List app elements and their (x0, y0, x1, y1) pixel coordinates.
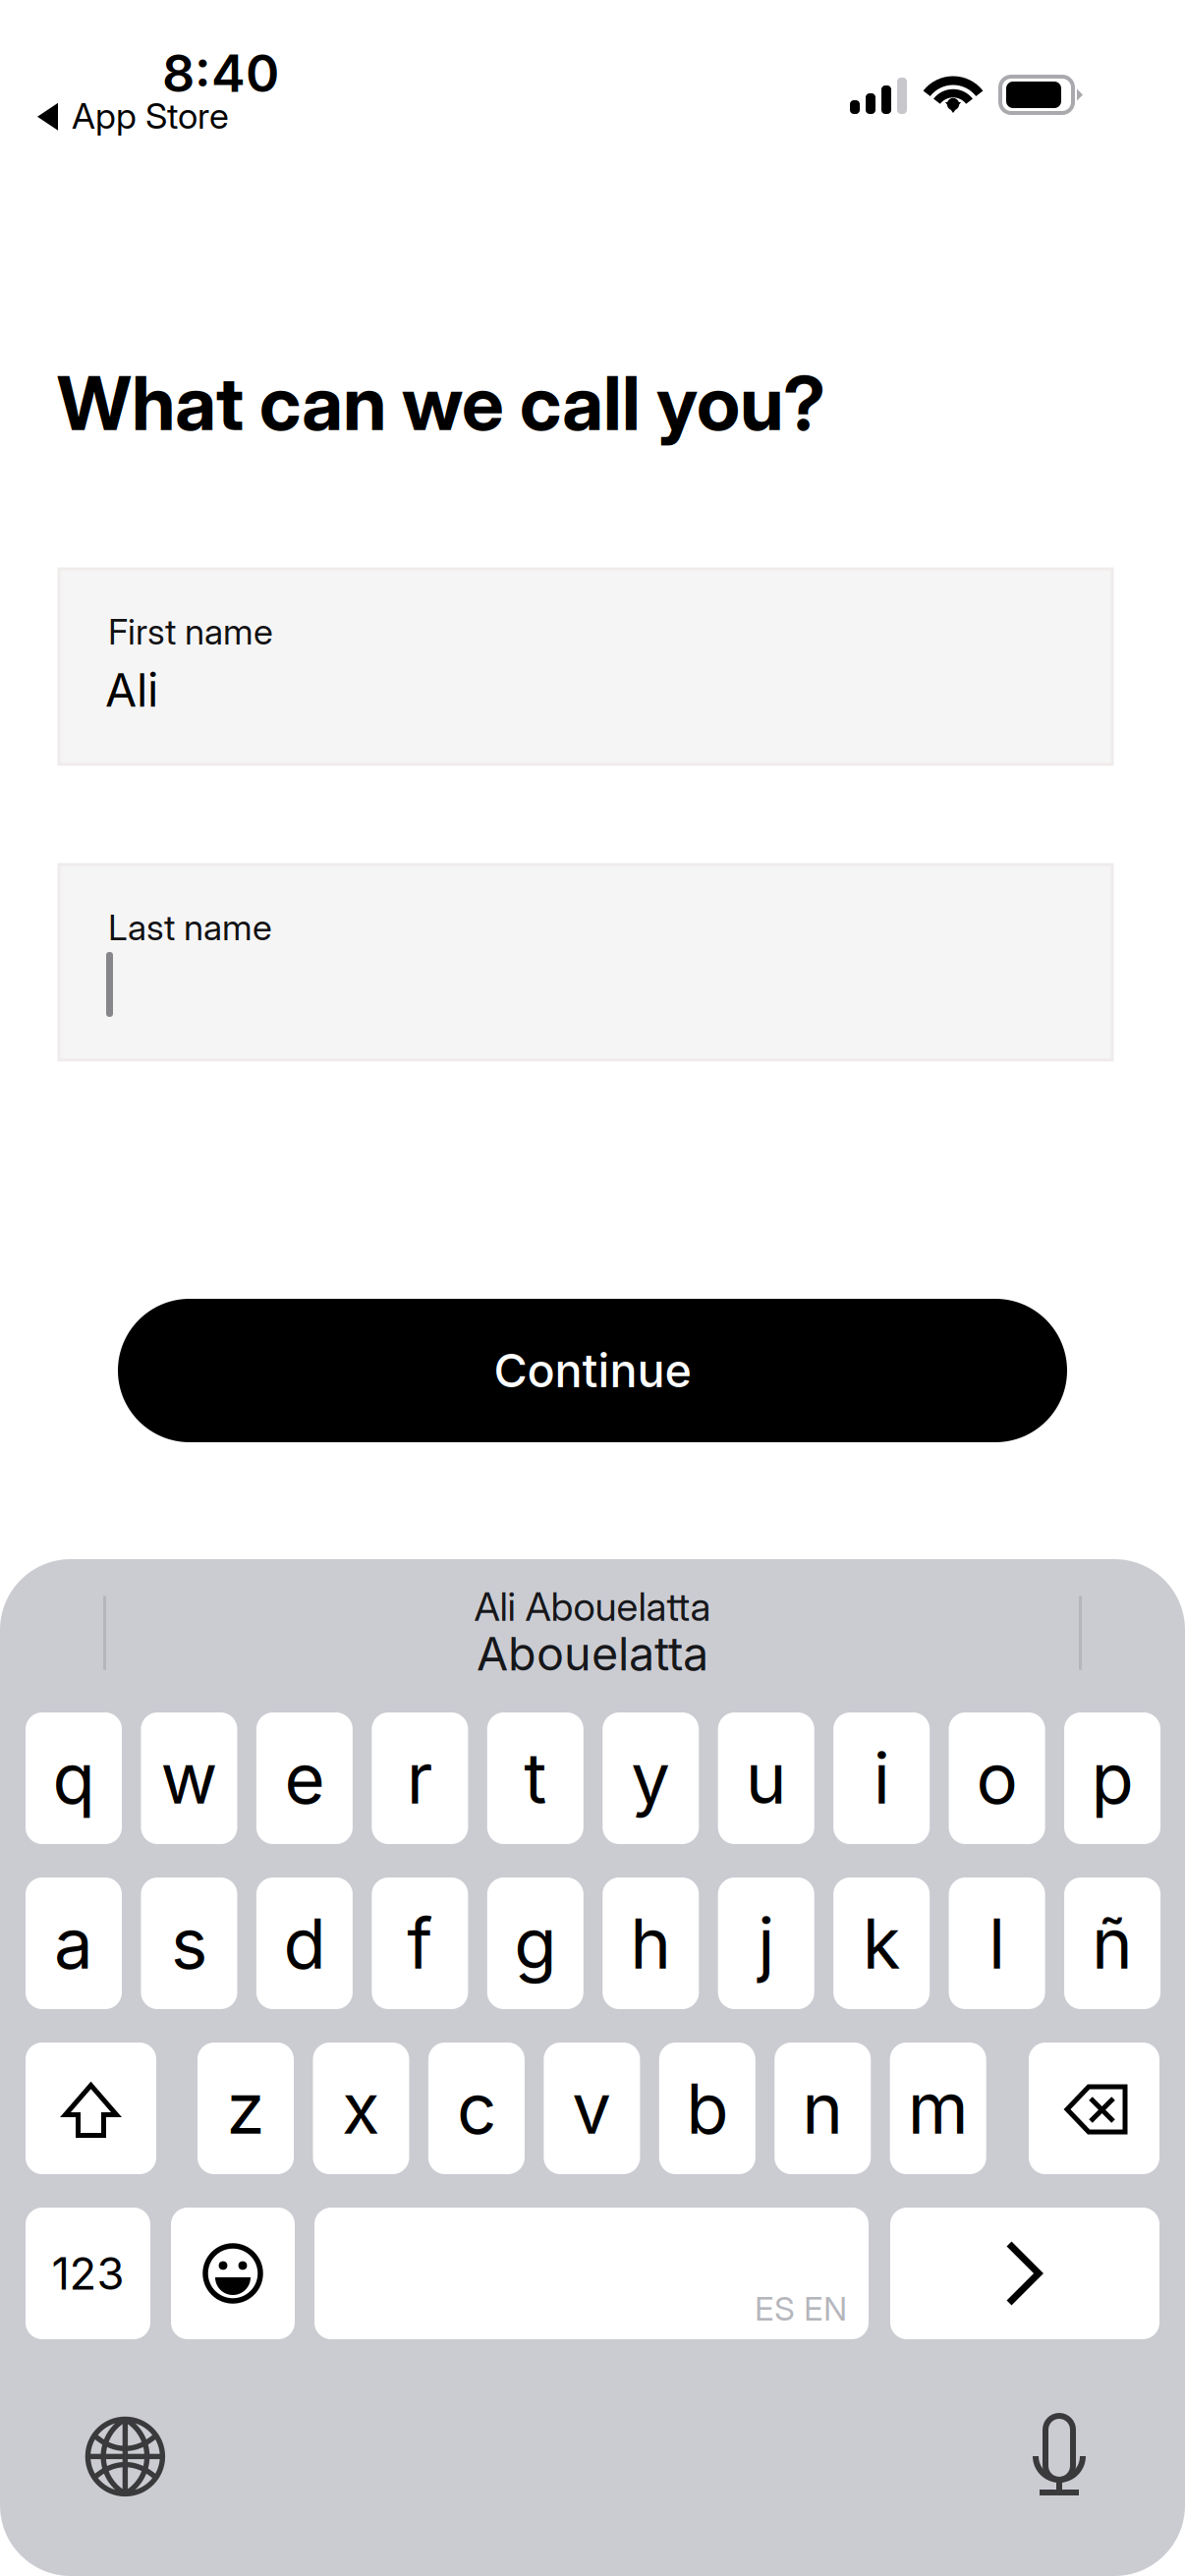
button[interactable]: App Store (29, 85, 237, 148)
button[interactable]: s (141, 1877, 237, 2009)
staticText: a (54, 1901, 93, 1985)
button[interactable]: Next keyboard (83, 2414, 168, 2499)
staticText: t (524, 1736, 547, 1820)
button[interactable]: Last name (59, 865, 1112, 1060)
staticText: n (802, 2066, 843, 2150)
button[interactable]: n (774, 2043, 871, 2174)
button[interactable]: Go (890, 2208, 1159, 2339)
button[interactable]: 123 (26, 2208, 150, 2339)
button[interactable]: u (718, 1712, 814, 1844)
button[interactable]: z (197, 2043, 294, 2174)
button[interactable]: First name (59, 569, 1112, 764)
staticText: g (514, 1901, 556, 1985)
staticText: f (407, 1901, 433, 1985)
button[interactable]: Delete (1029, 2043, 1159, 2174)
button[interactable]: Continue (118, 1299, 1067, 1442)
button[interactable]: Emoji (171, 2208, 295, 2339)
button[interactable]: Dictation (1032, 2412, 1087, 2498)
staticText: j (758, 1901, 774, 1985)
button[interactable]: l (949, 1877, 1045, 2009)
button[interactable]: k (833, 1877, 930, 2009)
button[interactable]: e (256, 1712, 353, 1844)
staticText: ñ (1092, 1901, 1133, 1985)
button[interactable]: c (428, 2043, 525, 2174)
button[interactable]: t (487, 1712, 583, 1844)
button[interactable]: m (890, 2043, 986, 2174)
staticText: c (457, 2066, 496, 2150)
button[interactable]: b (659, 2043, 755, 2174)
staticText: b (686, 2066, 728, 2150)
staticText: u (745, 1736, 787, 1820)
button[interactable]: o (949, 1712, 1045, 1844)
button[interactable]: w (141, 1712, 237, 1844)
staticText: q (53, 1736, 95, 1820)
button[interactable]: y (603, 1712, 699, 1844)
staticText: e (284, 1736, 325, 1820)
staticText: w (161, 1736, 218, 1820)
staticText: l (989, 1901, 1005, 1985)
staticText: What can we call you? (57, 358, 825, 448)
staticText: 123 (52, 2246, 124, 2300)
button[interactable]: x (313, 2043, 409, 2174)
staticText: z (226, 2066, 265, 2150)
staticText: m (908, 2066, 969, 2150)
staticText: 8:40 (162, 42, 279, 104)
button[interactable]: h (603, 1877, 699, 2009)
staticText: ES EN (755, 2289, 847, 2328)
button[interactable]: d (256, 1877, 353, 2009)
button[interactable]: j (718, 1877, 814, 2009)
staticText: p (1091, 1736, 1134, 1820)
staticText: Continue (494, 1343, 691, 1398)
staticText: k (862, 1901, 901, 1985)
staticText: o (976, 1736, 1018, 1820)
staticText: s (171, 1901, 207, 1985)
staticText: x (342, 2066, 380, 2150)
button[interactable]: v (544, 2043, 640, 2174)
staticText: y (631, 1736, 670, 1820)
staticText: Ali Abouelatta (474, 1583, 711, 1630)
staticText: Last name (108, 906, 272, 949)
staticText: d (283, 1901, 326, 1985)
staticText: h (630, 1901, 671, 1985)
button[interactable]: space (314, 2208, 869, 2339)
button[interactable]: i (833, 1712, 930, 1844)
button[interactable]: ñ (1064, 1877, 1161, 2009)
staticText: i (873, 1736, 890, 1820)
button[interactable]: f (372, 1877, 468, 2009)
button[interactable]: q (26, 1712, 122, 1844)
staticText: r (407, 1736, 433, 1820)
button[interactable]: Shift (26, 2043, 156, 2174)
button[interactable]: r (372, 1712, 468, 1844)
staticText: v (572, 2066, 612, 2150)
button[interactable]: g (487, 1877, 583, 2009)
button[interactable]: p (1064, 1712, 1161, 1844)
staticText: App Store (72, 94, 229, 137)
staticText: Abouelatta (477, 1626, 708, 1681)
button[interactable]: a (26, 1877, 122, 2009)
staticText: First name (108, 610, 273, 653)
staticText: Ali (105, 662, 158, 718)
